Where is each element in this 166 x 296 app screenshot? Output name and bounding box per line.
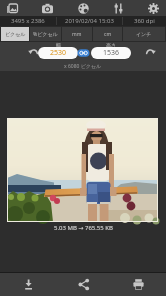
- button[interactable]: [24, 44, 42, 60]
- button[interactable]: [6, 2, 19, 15]
- button[interactable]: ピクセル: [1, 27, 29, 41]
- staticText: 3495 x 2386: [11, 17, 45, 25]
- staticText: 2019/02/04 15:03: [65, 17, 114, 25]
- staticText: 360 dpi: [134, 17, 155, 25]
- button[interactable]: [41, 2, 54, 15]
- button[interactable]: [111, 273, 166, 296]
- button[interactable]: cm: [93, 27, 122, 41]
- staticText: 2530: [50, 48, 67, 58]
- staticText: 幅: [56, 42, 61, 47]
- staticText: x 6080 ピクセル: [64, 63, 102, 70]
- button[interactable]: [77, 2, 90, 15]
- staticText: mm: [72, 31, 82, 38]
- button[interactable]: [0, 273, 56, 296]
- staticText: cm: [104, 31, 112, 38]
- staticText: 高さ: [106, 42, 117, 47]
- button[interactable]: [147, 2, 160, 15]
- button[interactable]: [112, 2, 125, 15]
- button[interactable]: 2530: [38, 47, 78, 59]
- staticText: 5.03 MB → 765.55 KB: [54, 224, 113, 232]
- button[interactable]: [75, 47, 91, 59]
- staticText: %ピクセル: [33, 31, 58, 38]
- button[interactable]: mm: [62, 27, 92, 41]
- button[interactable]: 1536: [91, 47, 131, 59]
- button[interactable]: インチ: [123, 27, 165, 41]
- button[interactable]: [141, 44, 159, 60]
- staticText: 1536: [103, 48, 120, 58]
- button[interactable]: [56, 273, 111, 296]
- staticText: インチ: [136, 31, 152, 37]
- button[interactable]: %ピクセル: [30, 27, 61, 41]
- staticText: ピクセル: [5, 31, 26, 37]
